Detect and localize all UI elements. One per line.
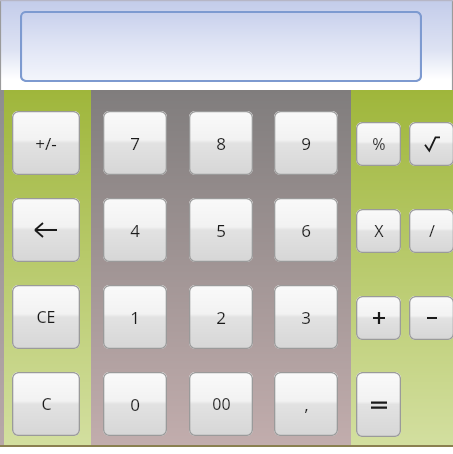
button[interactable]: CE (12, 285, 80, 349)
button[interactable]: 7 (103, 111, 167, 175)
staticText: , (304, 393, 309, 416)
button[interactable]: 8 (189, 111, 253, 175)
staticText: 9 (301, 132, 311, 155)
staticText: 3 (301, 306, 311, 329)
button[interactable]: 9 (274, 111, 338, 175)
staticText: 4 (130, 219, 140, 242)
staticText: 5 (216, 219, 226, 242)
staticText: CE (36, 306, 56, 328)
button[interactable]: 1 (103, 285, 167, 349)
button[interactable]: 4 (103, 198, 167, 262)
button[interactable]: / (409, 209, 453, 253)
staticText: 8 (216, 132, 226, 155)
button[interactable]: C (12, 372, 80, 436)
button[interactable]: Minus (409, 296, 453, 340)
staticText: / (429, 220, 435, 242)
button[interactable]: % (356, 122, 401, 166)
staticText: 00 (212, 393, 231, 415)
button[interactable]: Backspace (12, 198, 80, 262)
staticText: C (41, 393, 52, 415)
button[interactable]: 3 (274, 285, 338, 349)
button[interactable]: Display (20, 11, 422, 82)
button[interactable]: X (356, 209, 401, 253)
button[interactable]: , (274, 372, 338, 436)
staticText: +/- (35, 132, 57, 155)
staticText: 1 (130, 306, 140, 329)
button[interactable]: Equals (356, 372, 401, 437)
button[interactable]: 5 (189, 198, 253, 262)
button[interactable]: 6 (274, 198, 338, 262)
staticText: 6 (301, 219, 311, 242)
button[interactable]: 0 (103, 372, 167, 436)
staticText: 7 (130, 132, 140, 155)
button[interactable]: Plus (356, 296, 401, 340)
staticText: 0 (130, 393, 140, 416)
button[interactable]: +/- (12, 111, 80, 175)
staticText: 2 (216, 306, 226, 329)
button[interactable]: Square root (409, 122, 453, 166)
button[interactable]: 2 (189, 285, 253, 349)
staticText: % (372, 133, 386, 155)
staticText: X (374, 220, 384, 242)
button[interactable]: 00 (189, 372, 253, 436)
